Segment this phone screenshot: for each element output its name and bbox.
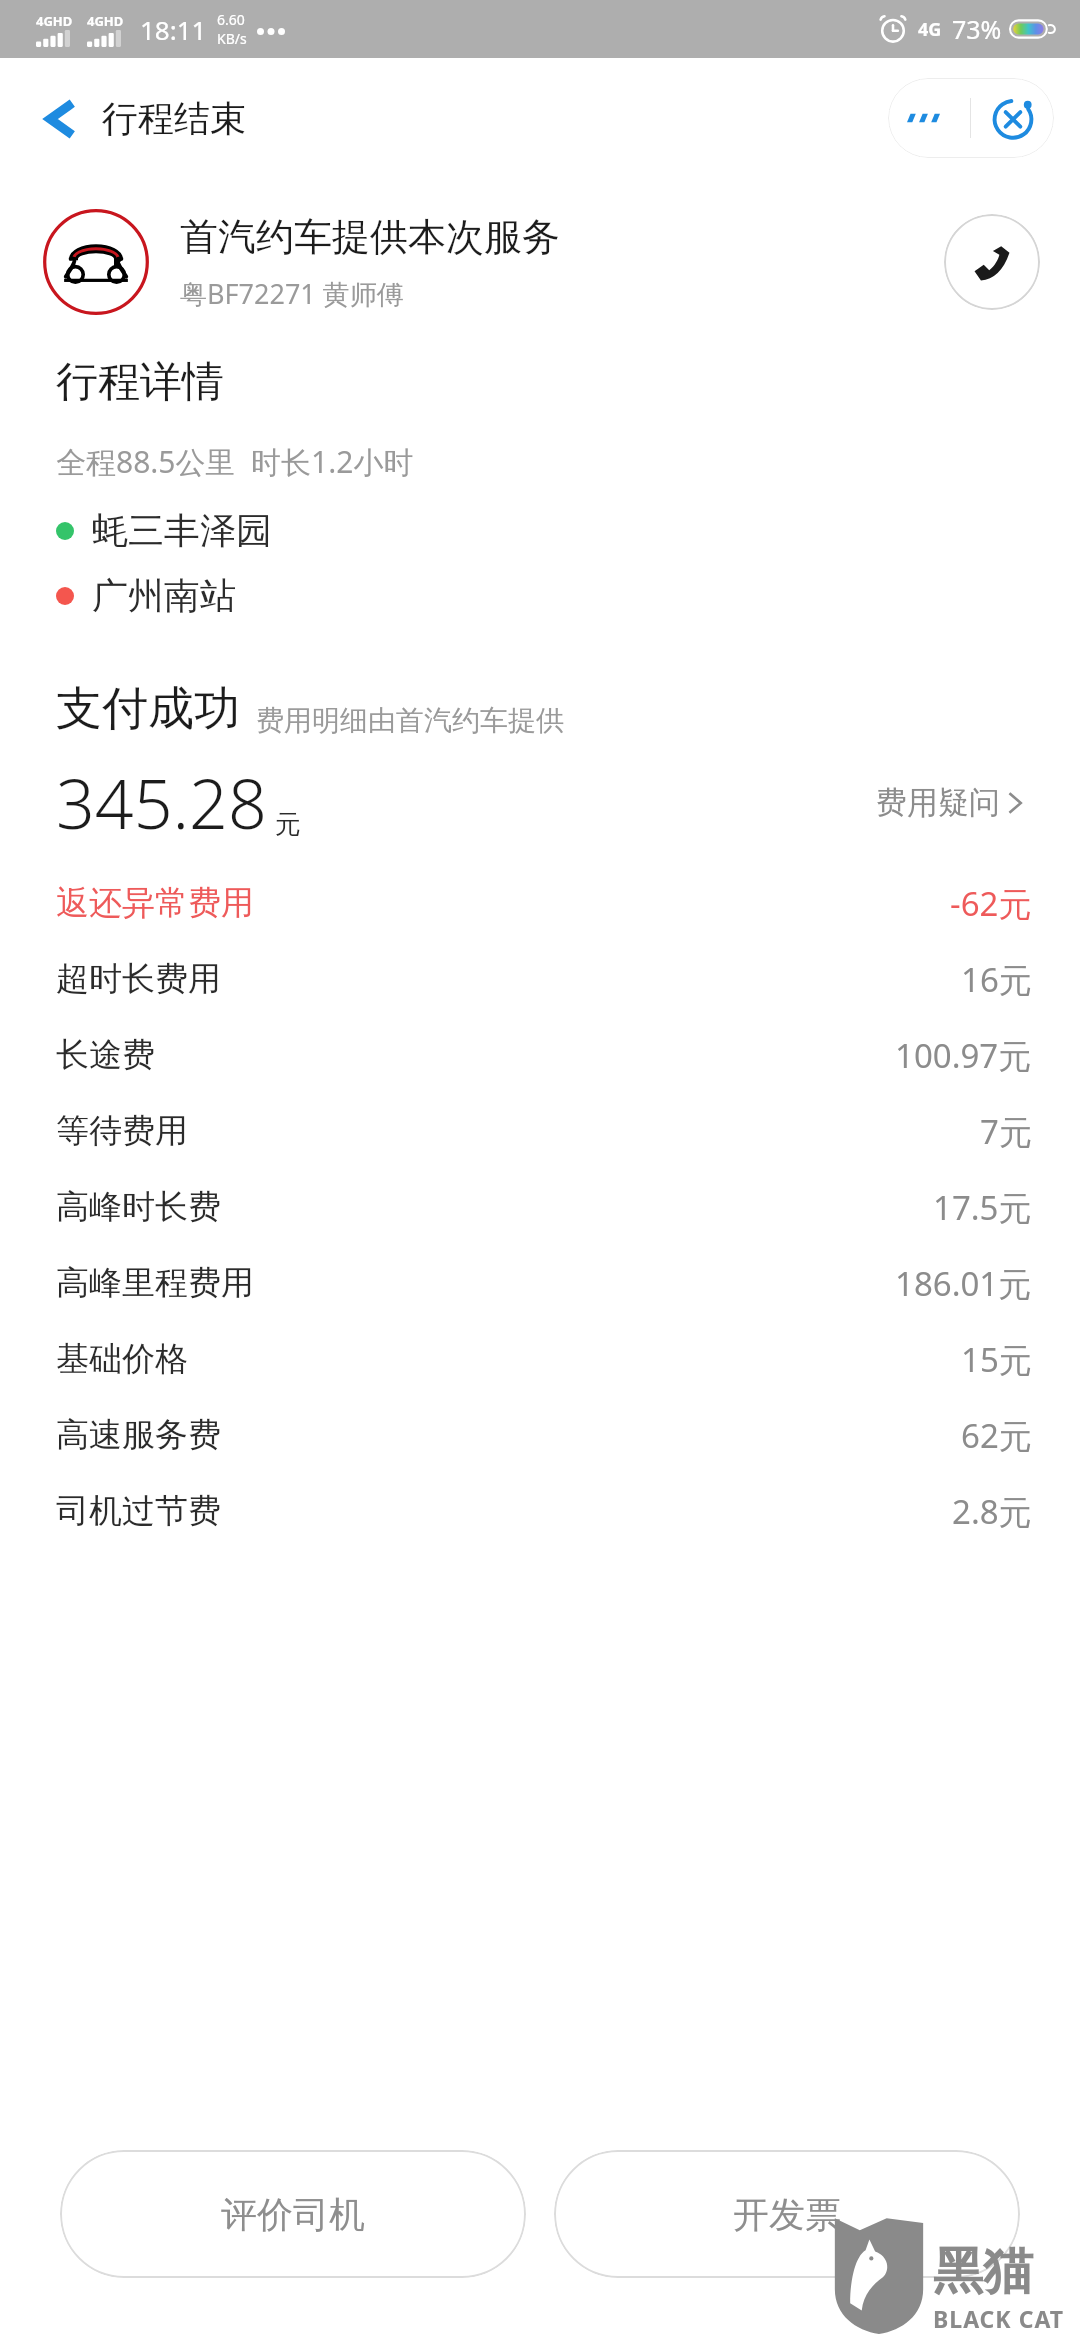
staticText: 高峰时长费 bbox=[56, 1186, 221, 1228]
staticText: 15元 bbox=[961, 1337, 1032, 1382]
staticText: 186.01元 bbox=[895, 1261, 1032, 1306]
button[interactable]: 评价司机 bbox=[60, 2150, 526, 2278]
staticText: 全程88.5公里 时长1.2小时 bbox=[56, 441, 414, 482]
staticText: 首汽约车提供本次服务 bbox=[180, 213, 560, 261]
staticText: 4GHD bbox=[87, 12, 124, 30]
button[interactable]: 费用疑问 bbox=[868, 775, 1032, 830]
button[interactable]: Close bbox=[971, 78, 1054, 158]
staticText: 高峰里程费用 bbox=[56, 1262, 254, 1304]
button[interactable]: 高峰时长费 bbox=[56, 1169, 1032, 1245]
staticText: 元 bbox=[275, 808, 301, 841]
staticText: 开发票 bbox=[733, 2192, 841, 2237]
button[interactable]: 高峰里程费用 bbox=[56, 1245, 1032, 1321]
staticText: KB/s bbox=[217, 29, 247, 48]
staticText: 73% bbox=[952, 12, 1002, 46]
staticText: BLACK CAT bbox=[933, 2303, 1064, 2334]
staticText: 18:11 bbox=[140, 12, 207, 47]
staticText: 345.28 bbox=[56, 756, 267, 849]
staticText: 高速服务费 bbox=[56, 1414, 221, 1456]
staticText: 6.60 bbox=[217, 10, 245, 29]
staticText: 行程详情 bbox=[56, 356, 224, 409]
button[interactable]: Call driver bbox=[944, 214, 1040, 310]
staticText: 行程结束 bbox=[102, 96, 246, 141]
button[interactable]: 长途费 bbox=[56, 1017, 1032, 1093]
staticText: 长途费 bbox=[56, 1034, 155, 1076]
button[interactable]: More options bbox=[888, 78, 970, 158]
staticText: 蚝三丰泽园 bbox=[92, 508, 272, 553]
staticText: 等待费用 bbox=[56, 1110, 188, 1152]
button[interactable]: 基础价格 bbox=[56, 1321, 1032, 1397]
button[interactable]: 高速服务费 bbox=[56, 1397, 1032, 1473]
staticText: 100.97元 bbox=[895, 1033, 1032, 1078]
staticText: 4GHD bbox=[36, 12, 73, 30]
staticText: 基础价格 bbox=[56, 1338, 188, 1380]
button[interactable]: 开发票 bbox=[554, 2150, 1020, 2278]
staticText: 粤BF72271 黄师傅 bbox=[180, 275, 404, 312]
staticText: 7元 bbox=[980, 1109, 1032, 1154]
staticText: 17.5元 bbox=[933, 1185, 1032, 1230]
other: Back bbox=[44, 97, 74, 141]
button[interactable]: 返还异常费用 bbox=[56, 865, 1032, 941]
button[interactable]: 司机过节费 bbox=[56, 1473, 1032, 1549]
staticText: -62元 bbox=[950, 881, 1032, 926]
staticText: 评价司机 bbox=[221, 2192, 365, 2237]
staticText: 16元 bbox=[961, 957, 1032, 1002]
staticText: 2.8元 bbox=[952, 1489, 1032, 1534]
button[interactable]: 等待费用 bbox=[56, 1093, 1032, 1169]
staticText: 费用明细由首汽约车提供 bbox=[256, 703, 564, 738]
staticText: 司机过节费 bbox=[56, 1490, 221, 1532]
staticText: 费用疑问 bbox=[876, 783, 1000, 822]
staticText: 支付成功 bbox=[56, 680, 240, 738]
staticText: 返还异常费用 bbox=[56, 882, 254, 924]
staticText: 4G bbox=[918, 17, 942, 42]
staticText: 黑猫 bbox=[933, 2240, 1033, 2303]
staticText: 62元 bbox=[961, 1413, 1032, 1458]
staticText: 广州南站 bbox=[92, 573, 236, 618]
button[interactable]: Back bbox=[30, 86, 260, 151]
button[interactable]: 超时长费用 bbox=[56, 941, 1032, 1017]
staticText: 超时长费用 bbox=[56, 958, 221, 1000]
